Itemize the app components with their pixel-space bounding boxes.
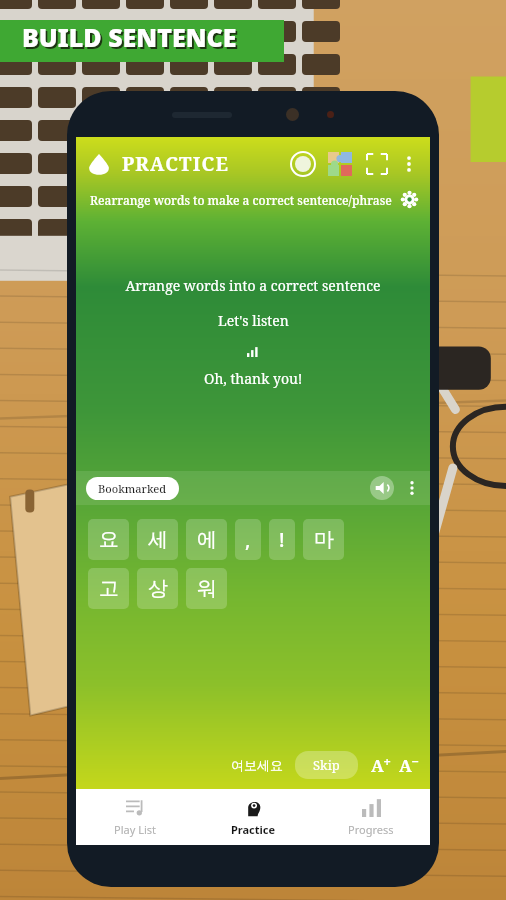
staticText: 요	[99, 527, 119, 552]
button[interactable]: 에	[186, 519, 227, 560]
staticText: Practice	[231, 822, 276, 837]
staticText: A⁻	[399, 754, 419, 776]
staticText: Let's listen	[218, 311, 289, 330]
button[interactable]: Record	[290, 151, 316, 177]
button[interactable]: Increase text size	[370, 754, 392, 776]
button[interactable]: Puzzle mode	[328, 152, 352, 176]
staticText: 마	[314, 527, 334, 552]
staticText: Progress	[348, 822, 394, 837]
button[interactable]: Play audio	[370, 476, 394, 500]
button[interactable]: 세	[137, 519, 178, 560]
staticText: 고	[99, 576, 119, 601]
staticText: ,	[245, 526, 251, 553]
staticText: Skip	[313, 756, 340, 774]
staticText: 상	[148, 576, 168, 601]
button[interactable]: More options	[400, 155, 418, 173]
button[interactable]: App logo	[88, 153, 110, 175]
button[interactable]: 고	[88, 568, 129, 609]
button[interactable]: ,	[235, 519, 261, 560]
staticText: Bookmarked	[98, 481, 167, 496]
button[interactable]: 요	[88, 519, 129, 560]
staticText: Oh, thank you!	[204, 369, 303, 388]
button[interactable]: Settings	[401, 191, 418, 208]
staticText: !	[279, 526, 285, 553]
button[interactable]: 워	[186, 568, 227, 609]
button[interactable]: Decrease text size	[398, 754, 420, 776]
button[interactable]: Skip	[295, 751, 358, 779]
staticText: BUILD SENTENCE QUIZ	[22, 20, 284, 62]
staticText: BUILD SENTENCE QUIZ	[24, 22, 286, 64]
button[interactable]: 마	[303, 519, 344, 560]
staticText: Rearrange words to make a correct senten…	[90, 192, 392, 208]
button[interactable]: Bookmarked	[86, 477, 179, 500]
button[interactable]: !	[269, 519, 295, 560]
button[interactable]: Practice	[194, 789, 312, 845]
staticText: A⁺	[371, 754, 391, 776]
staticText: 에	[197, 527, 217, 552]
button[interactable]: More options	[404, 480, 420, 496]
button[interactable]: Progress	[312, 789, 430, 845]
staticText: 워	[197, 576, 217, 601]
button[interactable]: Play List	[76, 789, 194, 845]
staticText: PRACTICE	[122, 151, 230, 177]
staticText: Arrange words into a correct sentence	[125, 276, 381, 295]
staticText: 여보세요	[231, 757, 283, 773]
button[interactable]: 상	[137, 568, 178, 609]
button[interactable]: Fullscreen	[366, 153, 388, 175]
staticText: Play List	[114, 822, 156, 837]
staticText: 세	[148, 527, 168, 552]
